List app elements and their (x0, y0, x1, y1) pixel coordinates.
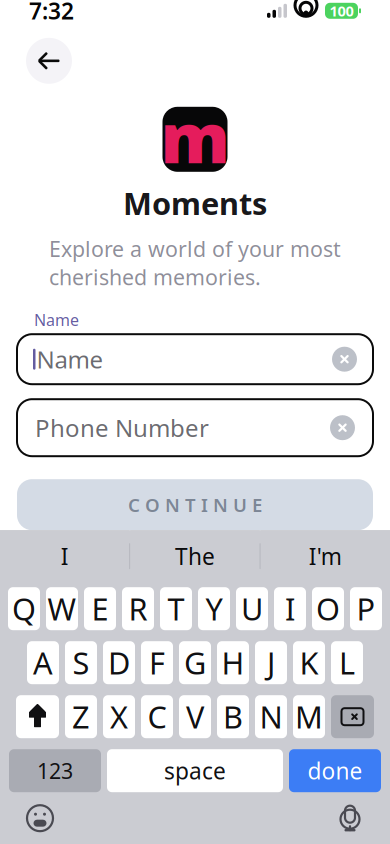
staticText: M (295, 696, 323, 737)
staticText: S (72, 642, 89, 683)
staticText: I (285, 588, 295, 629)
staticText: C O N T I N U E (128, 492, 262, 517)
button[interactable]: G (179, 641, 211, 684)
button[interactable]: Z (65, 695, 97, 738)
staticText: Explore a world of your most cherished m… (49, 234, 341, 291)
button[interactable]: S (65, 641, 97, 684)
button[interactable]: T (160, 587, 192, 630)
button[interactable]: L (331, 641, 363, 684)
staticText: m (160, 90, 229, 182)
staticText: The (175, 541, 215, 571)
button[interactable]: 123 (9, 749, 101, 792)
button[interactable]: C O N T I N U E (17, 479, 373, 530)
button[interactable]: W (46, 587, 78, 630)
staticText: T (167, 588, 184, 629)
staticText: 123 (37, 756, 73, 785)
staticText: 7:32 (29, 0, 74, 26)
staticText: W (47, 588, 76, 629)
staticText: Name (34, 309, 79, 330)
button[interactable]: The (130, 530, 260, 582)
button[interactable]: P (350, 587, 382, 630)
staticText: A (33, 642, 53, 683)
button[interactable]: Delete (331, 695, 374, 738)
button[interactable]: C (141, 695, 173, 738)
button[interactable]: F (141, 641, 173, 684)
button[interactable]: V (179, 695, 211, 738)
button[interactable]: Name (17, 334, 373, 384)
staticText: H (221, 642, 244, 683)
staticText: L (339, 642, 355, 683)
staticText: O (316, 588, 340, 629)
button[interactable]: Y (198, 587, 230, 630)
staticText: Phone Number (35, 412, 209, 444)
button[interactable]: Q (8, 587, 40, 630)
button[interactable]: I'm (261, 530, 390, 582)
button[interactable]: Shift (16, 695, 59, 738)
button[interactable]: U (236, 587, 268, 630)
staticText: Name (36, 343, 103, 375)
staticText: done (307, 756, 362, 786)
button[interactable]: E (84, 587, 116, 630)
button[interactable]: K (293, 641, 325, 684)
button[interactable]: Back (26, 38, 72, 84)
button[interactable]: Dictate (328, 796, 372, 840)
staticText: V (186, 696, 204, 737)
staticText: Moments (123, 183, 267, 223)
button[interactable]: D (103, 641, 135, 684)
staticText: N (259, 696, 282, 737)
button[interactable]: Emoji (18, 796, 62, 840)
button[interactable]: I (0, 530, 129, 582)
staticText: P (356, 588, 375, 629)
staticText: E (91, 588, 108, 629)
staticText: Y (205, 588, 222, 629)
staticText: R (128, 588, 147, 629)
button[interactable]: H (217, 641, 249, 684)
staticText: X (110, 696, 128, 737)
button[interactable]: X (103, 695, 135, 738)
staticText: K (299, 642, 318, 683)
staticText: I'm (309, 541, 342, 571)
button[interactable]: M (293, 695, 325, 738)
staticText: U (241, 588, 263, 629)
staticText: Z (72, 696, 90, 737)
staticText: G (184, 642, 206, 683)
button[interactable]: B (217, 695, 249, 738)
staticText: space (164, 756, 226, 786)
staticText: J (267, 642, 275, 683)
staticText: I (61, 541, 69, 571)
staticText: Q (12, 588, 36, 629)
button[interactable]: R (122, 587, 154, 630)
button[interactable]: O (312, 587, 344, 630)
staticText: F (149, 642, 165, 683)
staticText: C (147, 696, 166, 737)
button[interactable]: N (255, 695, 287, 738)
staticText: D (108, 642, 130, 683)
button[interactable]: Phone Number (17, 399, 373, 456)
button[interactable]: space (107, 749, 283, 792)
button[interactable]: I (274, 587, 306, 630)
staticText: 100 (329, 1, 353, 21)
staticText: B (223, 696, 243, 737)
button[interactable]: done (289, 749, 381, 792)
button[interactable]: J (255, 641, 287, 684)
button[interactable]: A (27, 641, 59, 684)
